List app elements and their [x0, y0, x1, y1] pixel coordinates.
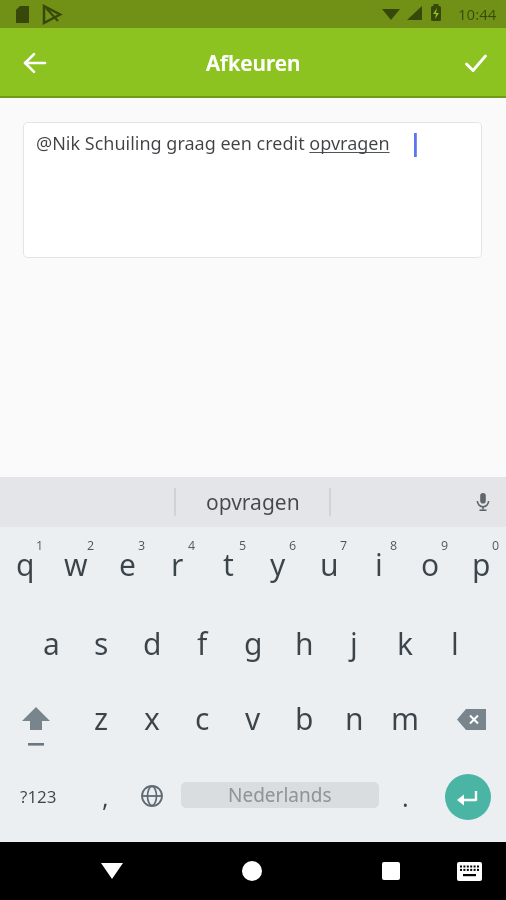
button[interactable]: Nederlands [181, 782, 379, 808]
button[interactable] [446, 694, 496, 744]
button[interactable]: l [430, 617, 480, 669]
button[interactable] [227, 846, 277, 896]
button[interactable] [87, 846, 137, 896]
staticText: 2 [87, 537, 95, 554]
staticText: 10:44 [458, 4, 497, 24]
button[interactable] [127, 772, 177, 820]
staticText: z [94, 698, 109, 739]
staticText: y [270, 544, 286, 585]
staticText: b [295, 698, 314, 739]
staticText: f [197, 623, 208, 664]
button[interactable]: u [304, 538, 354, 590]
button[interactable]: c [177, 692, 227, 744]
staticText: 0 [492, 537, 500, 554]
staticText: 6 [289, 537, 297, 554]
button[interactable]: y [253, 538, 303, 590]
staticText: c [195, 698, 210, 739]
staticText: 5 [239, 537, 247, 554]
button[interactable]: i [354, 538, 404, 590]
button[interactable]: opvragen [178, 477, 328, 527]
button[interactable]: f [177, 617, 227, 669]
staticText: ?123 [20, 785, 57, 808]
staticText: j [350, 623, 358, 664]
button[interactable]: n [329, 692, 379, 744]
staticText: . [402, 780, 409, 814]
button[interactable] [452, 39, 500, 87]
staticText: m [391, 698, 420, 739]
staticText: @Nik Schuiling graag een credit opvragen [36, 131, 390, 156]
button[interactable]: w [51, 538, 101, 590]
button[interactable]: d [127, 617, 177, 669]
button[interactable]: k [380, 617, 430, 669]
staticText: q [16, 544, 35, 585]
staticText: u [320, 544, 339, 585]
button[interactable] [468, 487, 498, 517]
staticText: a [43, 623, 60, 664]
staticText: 7 [340, 537, 348, 554]
button[interactable]: r [152, 538, 202, 590]
button[interactable]: ?123 [13, 772, 63, 820]
button[interactable]: q [0, 538, 50, 590]
staticText: 3 [138, 537, 146, 554]
button[interactable]: z [76, 692, 126, 744]
staticText: i [375, 544, 383, 585]
staticText: r [171, 544, 184, 585]
button[interactable]: e [102, 538, 152, 590]
staticText: n [345, 698, 364, 739]
button[interactable]: a [26, 617, 76, 669]
button[interactable] [444, 846, 494, 896]
staticText: 4 [188, 537, 196, 554]
staticText: , [102, 780, 109, 814]
staticText: Afkeuren [206, 49, 301, 78]
staticText: x [144, 698, 160, 739]
button[interactable]: m [380, 692, 430, 744]
button[interactable]: o [405, 538, 455, 590]
button[interactable]: h [279, 617, 329, 669]
staticText: o [421, 544, 440, 585]
staticText: 8 [390, 537, 398, 554]
button[interactable] [11, 39, 59, 87]
staticText: g [244, 623, 263, 664]
staticText: Nederlands [228, 782, 332, 808]
button[interactable]: v [228, 692, 278, 744]
staticText: p [472, 544, 491, 585]
staticText: s [94, 623, 109, 664]
staticText: e [119, 544, 136, 585]
staticText: opvragen [206, 488, 300, 517]
button[interactable]: x [127, 692, 177, 744]
button[interactable]: g [228, 617, 278, 669]
button[interactable]: j [329, 617, 379, 669]
staticText: w [64, 544, 88, 585]
button[interactable]: t [203, 538, 253, 590]
button[interactable]: , [80, 771, 130, 819]
staticText: t [223, 544, 234, 585]
staticText: v [245, 698, 261, 739]
staticText: d [143, 623, 162, 664]
button[interactable] [445, 774, 491, 820]
staticText: 9 [441, 537, 449, 554]
staticText: l [451, 623, 459, 664]
button[interactable] [366, 846, 416, 896]
button[interactable] [11, 700, 61, 750]
staticText: k [397, 623, 414, 664]
button[interactable]: p [456, 538, 506, 590]
staticText: h [295, 623, 314, 664]
button[interactable]: b [279, 692, 329, 744]
button[interactable]: @Nik Schuiling graag een credit opvragen [23, 122, 482, 258]
staticText: 1 [36, 537, 44, 554]
button[interactable]: s [76, 617, 126, 669]
button[interactable]: . [380, 771, 430, 819]
